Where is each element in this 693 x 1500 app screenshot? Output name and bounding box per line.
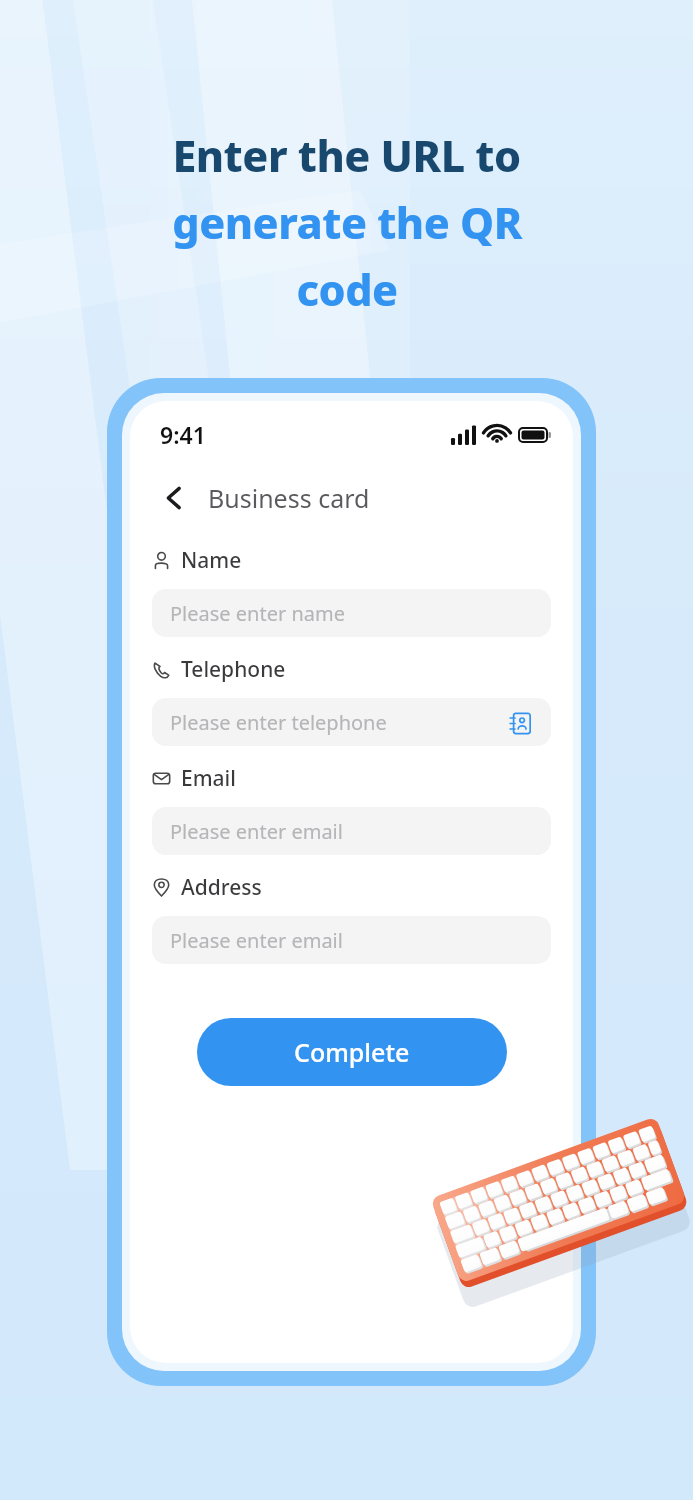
button[interactable]: Pick from contacts <box>507 710 533 736</box>
staticText: 9:41 <box>160 419 206 450</box>
staticText: Complete <box>294 1035 410 1069</box>
button[interactable]: Please enter email <box>152 807 551 855</box>
staticText: Please enter email <box>170 818 343 845</box>
button[interactable]: Back <box>152 476 196 520</box>
staticText: Telephone <box>181 655 286 684</box>
button[interactable]: Complete <box>197 1018 507 1086</box>
staticText: Email <box>181 764 236 793</box>
button[interactable]: Please enter email <box>152 916 551 964</box>
staticText: Please enter name <box>170 600 345 627</box>
button[interactable]: Please enter telephone <box>152 698 551 746</box>
staticText: generate the QR <box>172 193 522 252</box>
button[interactable]: Please enter name <box>152 589 551 637</box>
staticText: Please enter telephone <box>170 709 387 736</box>
staticText: Enter the URL to <box>172 126 521 185</box>
staticText: Name <box>181 546 242 575</box>
staticText: Address <box>181 873 262 902</box>
staticText: code <box>296 260 398 319</box>
staticText: Business card <box>208 481 370 515</box>
staticText: Please enter email <box>170 927 343 954</box>
